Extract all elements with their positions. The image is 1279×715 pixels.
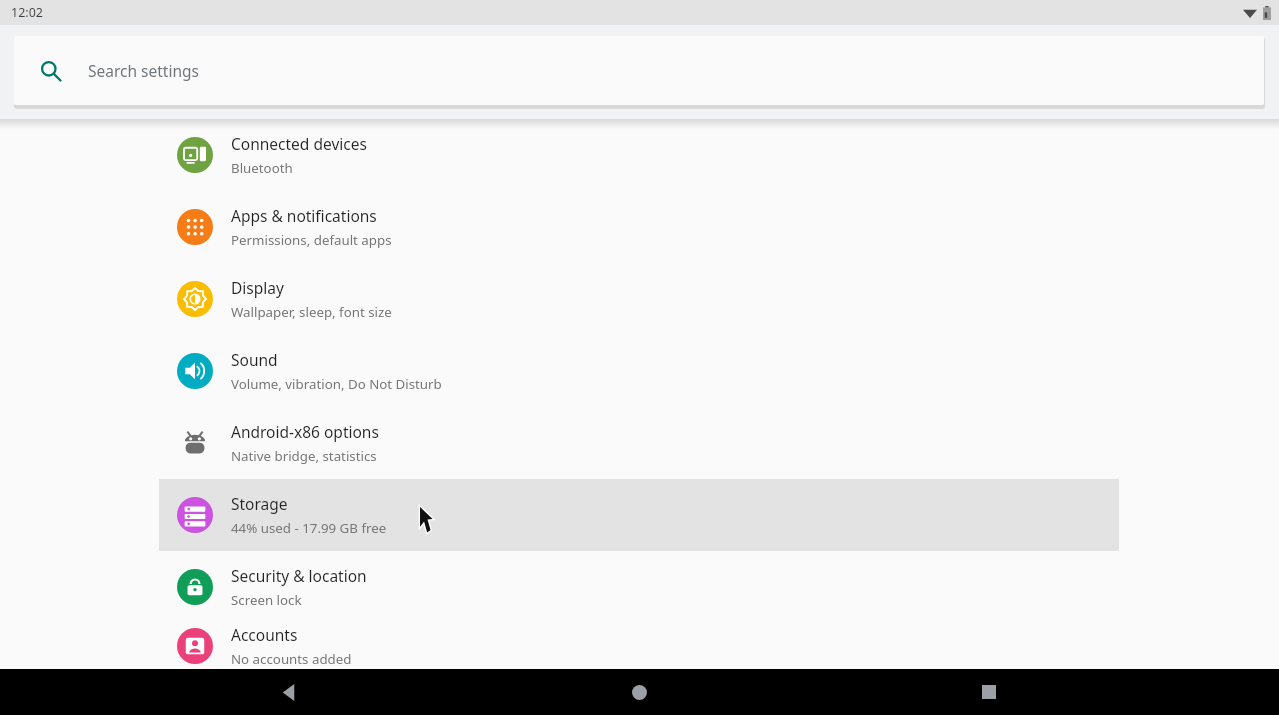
button[interactable]: Home xyxy=(579,669,699,715)
staticText: Screen lock xyxy=(231,591,302,609)
staticText: Apps & notifications xyxy=(231,205,377,226)
staticText: Android-x86 options xyxy=(231,421,379,442)
staticText: Storage xyxy=(231,493,288,514)
staticText: Wallpaper, sleep, font size xyxy=(231,303,392,321)
button[interactable]: Recent apps xyxy=(929,669,1049,715)
staticText: Accounts xyxy=(231,624,298,645)
staticText: Volume, vibration, Do Not Disturb xyxy=(231,375,442,393)
staticText: Permissions, default apps xyxy=(231,231,392,249)
staticText: Bluetooth xyxy=(231,159,293,177)
button[interactable]: Back xyxy=(229,669,349,715)
button[interactable]: Sound xyxy=(0,335,1279,407)
button[interactable]: Apps & notifications xyxy=(0,191,1279,263)
button[interactable]: Connected devices xyxy=(0,119,1279,191)
staticText: Sound xyxy=(231,349,278,370)
staticText: 12:02 xyxy=(11,4,43,21)
staticText: Search settings xyxy=(88,60,199,81)
staticText: Native bridge, statistics xyxy=(231,447,377,465)
button[interactable]: Accounts xyxy=(0,623,1279,669)
staticText: 44% used - 17.99 GB free xyxy=(231,519,387,537)
staticText: Connected devices xyxy=(231,133,367,154)
button[interactable]: Display xyxy=(0,263,1279,335)
staticText: No accounts added xyxy=(231,650,352,668)
button[interactable]: Security & location xyxy=(0,551,1279,623)
button[interactable]: Search settings xyxy=(14,36,1264,105)
staticText: Security & location xyxy=(231,565,367,586)
staticText: Display xyxy=(231,277,284,298)
button[interactable]: Storage xyxy=(0,479,1279,551)
button[interactable]: Android-x86 options xyxy=(0,407,1279,479)
